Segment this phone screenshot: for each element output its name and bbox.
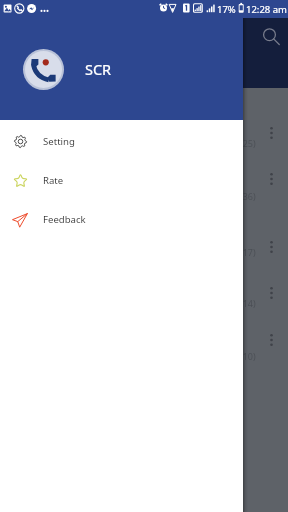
button[interactable]: Rate [0,161,243,200]
staticText: (25) [240,137,256,149]
staticText: (36) [240,190,256,202]
button[interactable]: Search [258,23,282,47]
button[interactable]: More options [269,286,274,300]
staticText: 17% [217,3,236,16]
staticText: Rate [43,174,64,187]
staticText: Feedback [43,213,86,226]
button[interactable]: More options [269,126,274,140]
staticText: Setting [43,135,75,148]
staticText: (17) [240,246,256,258]
button[interactable]: SCR [0,0,243,120]
button[interactable]: More options [269,333,274,347]
button[interactable]: More options [269,172,274,186]
staticText: 12:28 am [246,3,287,16]
button[interactable]: More options [269,240,274,254]
button[interactable]: Feedback [0,200,243,239]
staticText: SCR [85,59,112,79]
staticText: (10) [240,350,256,362]
button[interactable]: Setting [0,122,243,161]
staticText: (14) [240,297,256,309]
